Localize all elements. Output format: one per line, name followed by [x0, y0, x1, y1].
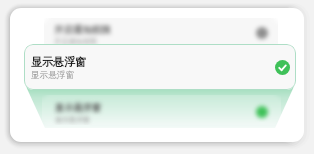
button[interactable]: 显示悬浮窗	[42, 95, 281, 125]
staticText: 开启通知权限	[54, 37, 98, 46]
staticText: 开启通知权限	[54, 24, 111, 36]
staticText: 显示悬浮窗	[31, 55, 86, 69]
button[interactable]: 开启通知权限	[44, 18, 278, 50]
staticText: 显示悬浮窗	[31, 70, 74, 81]
other: Permission granted	[275, 60, 290, 75]
button[interactable]: 显示悬浮窗	[24, 44, 296, 90]
staticText: 显示悬浮窗	[55, 102, 101, 114]
staticText: 显示悬浮窗	[55, 115, 90, 124]
